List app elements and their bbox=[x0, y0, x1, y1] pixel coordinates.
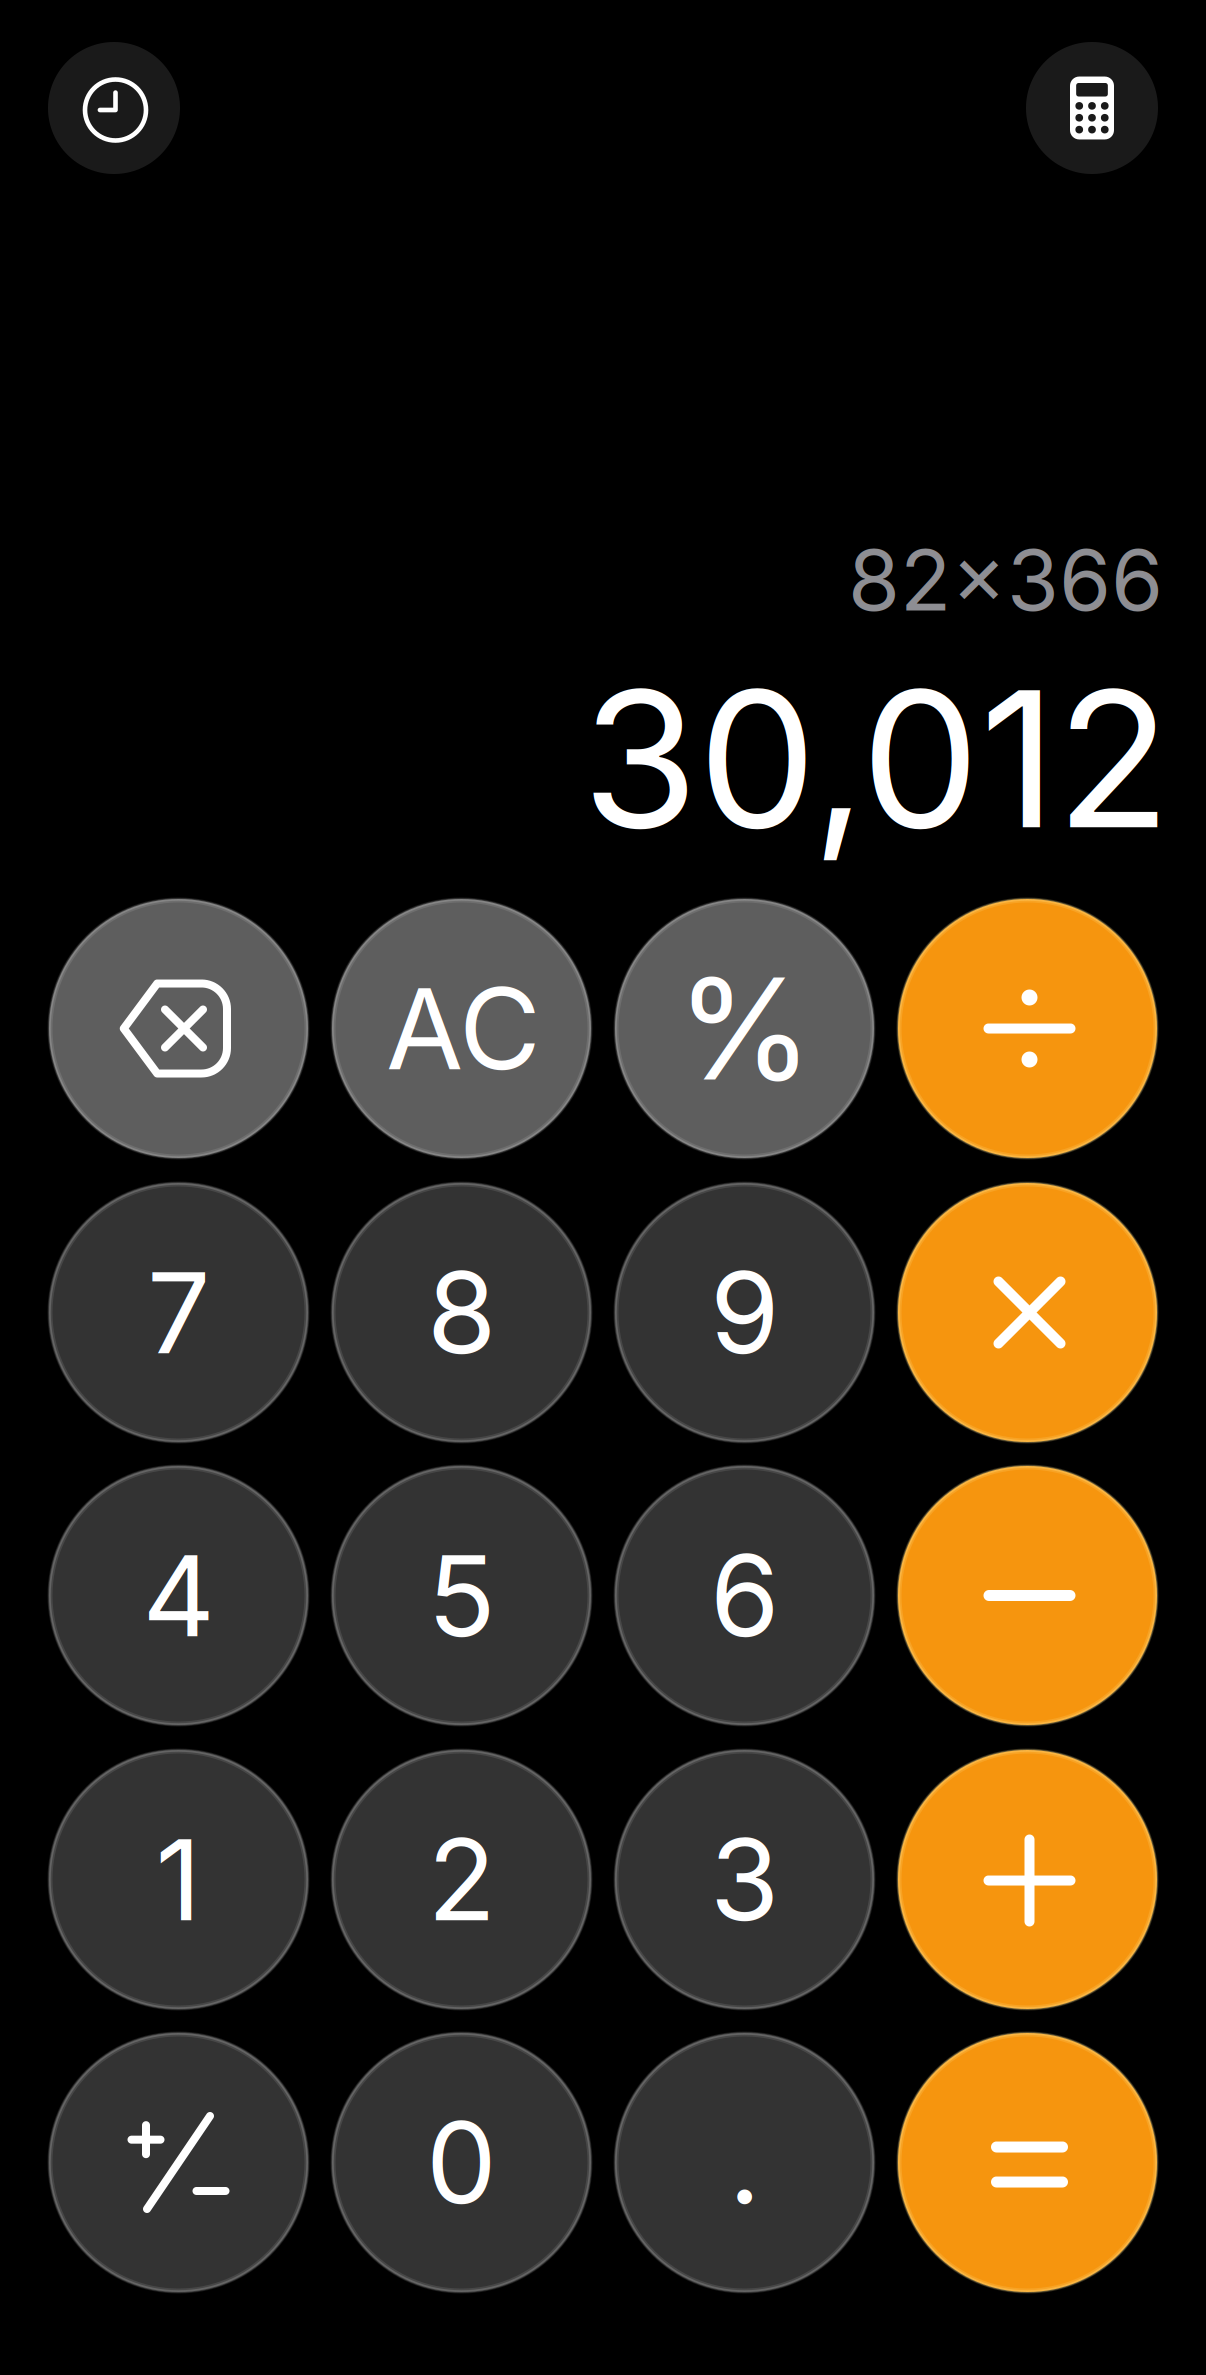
button[interactable]: % bbox=[615, 899, 874, 1158]
button[interactable]: Subtract bbox=[898, 1466, 1157, 1725]
staticText: 3 bbox=[710, 1812, 779, 1947]
button[interactable]: AC bbox=[332, 899, 591, 1158]
button[interactable]: 0 bbox=[332, 2033, 591, 2292]
staticText: 9 bbox=[710, 1245, 779, 1380]
button[interactable]: 4 bbox=[49, 1466, 308, 1725]
button[interactable]: Multiply bbox=[898, 1183, 1157, 1442]
button[interactable]: Plus minus bbox=[49, 2033, 308, 2292]
button[interactable]: 3 bbox=[615, 1750, 874, 2009]
button[interactable]: Add bbox=[898, 1750, 1157, 2009]
staticText: 82×366 bbox=[848, 529, 1163, 631]
staticText: 6 bbox=[710, 1528, 779, 1663]
button[interactable]: 5 bbox=[332, 1466, 591, 1725]
staticText: . bbox=[728, 2095, 760, 2230]
staticText: 7 bbox=[147, 1245, 210, 1380]
button[interactable]: 6 bbox=[615, 1466, 874, 1725]
staticText: 1 bbox=[155, 1812, 201, 1947]
button[interactable]: . bbox=[615, 2033, 874, 2292]
button[interactable]: 9 bbox=[615, 1183, 874, 1442]
button[interactable]: Delete bbox=[49, 899, 308, 1158]
staticText: 0 bbox=[426, 2095, 497, 2230]
button[interactable]: 1 bbox=[49, 1750, 308, 2009]
staticText: % bbox=[676, 944, 813, 1113]
staticText: 2 bbox=[427, 1812, 495, 1947]
button[interactable]: History bbox=[48, 42, 180, 174]
staticText: AC bbox=[386, 961, 541, 1096]
staticText: 8 bbox=[427, 1245, 496, 1380]
button[interactable]: 2 bbox=[332, 1750, 591, 2009]
staticText: 4 bbox=[142, 1528, 214, 1663]
button[interactable]: 7 bbox=[49, 1183, 308, 1442]
staticText: 5 bbox=[427, 1528, 495, 1663]
button[interactable]: Equals bbox=[898, 2033, 1157, 2292]
button[interactable]: Divide bbox=[898, 899, 1157, 1158]
staticText: 30,012 bbox=[582, 645, 1171, 872]
button[interactable]: Scientific calculator bbox=[1026, 42, 1158, 174]
button[interactable]: 8 bbox=[332, 1183, 591, 1442]
